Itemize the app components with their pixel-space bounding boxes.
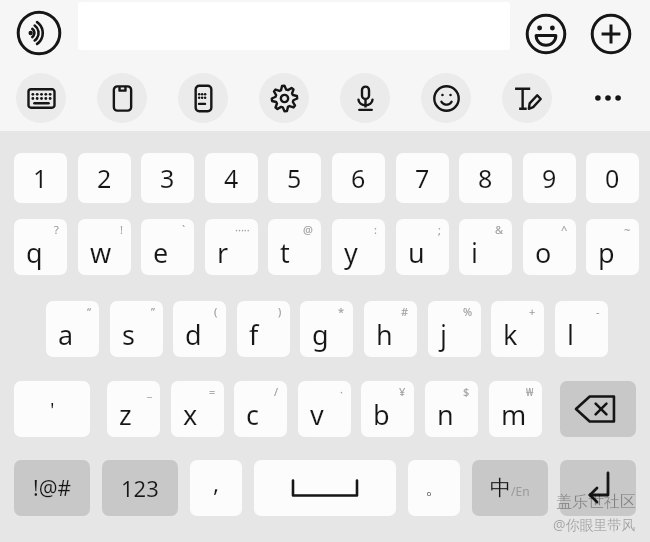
button[interactable]: Text editing (502, 73, 552, 123)
staticText: t (280, 234, 290, 271)
staticText: 5 (287, 161, 302, 195)
staticText: + (529, 304, 536, 319)
button[interactable]: 。 (408, 460, 460, 516)
staticText: 盖乐世社区 (556, 492, 636, 512)
staticText: = (209, 384, 216, 399)
staticText: # (401, 304, 409, 319)
staticText: @你眼里带风 (553, 515, 636, 534)
button[interactable]: ) (237, 301, 290, 357)
button[interactable]: 1 (14, 153, 67, 203)
button[interactable]: Clipboard (97, 73, 147, 123)
staticText: 4 (224, 161, 239, 195)
staticText: 0 (605, 161, 620, 195)
button[interactable]: ! (78, 219, 131, 275)
staticText: ~ (624, 222, 631, 237)
staticText: ' (50, 396, 55, 423)
button[interactable]: 4 (205, 153, 258, 203)
staticText: ! (120, 222, 123, 237)
button[interactable]: 6 (332, 153, 385, 203)
button[interactable]: * (300, 301, 353, 357)
staticText: 9 (542, 161, 557, 195)
button[interactable]: / (234, 381, 287, 437)
button[interactable]: ` (141, 219, 194, 275)
button[interactable]: ₩ (489, 381, 542, 437)
button[interactable]: ~ (586, 219, 639, 275)
button[interactable]: ¥ (361, 381, 414, 437)
staticText: ( (214, 304, 218, 319)
button[interactable]: ····· (205, 219, 258, 275)
staticText: x (183, 396, 198, 433)
staticText: m (501, 396, 527, 433)
button[interactable]: Enter (560, 460, 636, 516)
button[interactable]: Settings (259, 73, 309, 123)
button[interactable]: - (555, 301, 608, 357)
button[interactable]: 8 (459, 153, 512, 203)
button[interactable]: 9 (523, 153, 576, 203)
staticText: w (90, 234, 112, 271)
button[interactable]: : (332, 219, 385, 275)
button[interactable]: · (298, 381, 351, 437)
button[interactable]: ^ (523, 219, 576, 275)
button[interactable]: + (491, 301, 544, 357)
staticText: 7 (415, 161, 430, 195)
button[interactable]: !@# (14, 460, 90, 516)
button[interactable]: More options (583, 73, 633, 123)
staticText: ····· (235, 222, 250, 237)
staticText: @ (303, 222, 313, 237)
button[interactable]: 5 (268, 153, 321, 203)
button[interactable]: Handwriting (178, 73, 228, 123)
button[interactable]: Keyboard layout (16, 73, 66, 123)
button[interactable]: 2 (78, 153, 131, 203)
staticText: ` (182, 222, 186, 237)
staticText: o (535, 234, 552, 271)
staticText: , (213, 467, 220, 498)
button[interactable]: “ (46, 301, 99, 357)
button[interactable]: % (428, 301, 481, 357)
button[interactable]: Add (585, 8, 637, 60)
staticText: · (340, 384, 343, 399)
button[interactable]: Space (254, 460, 396, 516)
staticText: v (310, 396, 324, 433)
staticText: c (246, 396, 259, 433)
button[interactable]: ' (14, 381, 90, 437)
button[interactable]: , (190, 460, 242, 516)
staticText: f (249, 316, 259, 353)
staticText: : (374, 222, 377, 237)
staticText: a (58, 316, 74, 353)
staticText: i (471, 234, 478, 271)
staticText: ; (438, 222, 441, 237)
button[interactable]: = (171, 381, 224, 437)
staticText: & (495, 222, 504, 237)
staticText: ¥ (399, 384, 406, 399)
staticText: !@# (33, 474, 72, 503)
button[interactable]: Voice input (14, 8, 64, 58)
staticText: ) (278, 304, 282, 319)
staticText: ” (151, 304, 155, 319)
button[interactable]: ; (396, 219, 449, 275)
button[interactable]: 中 (472, 460, 548, 516)
staticText: 6 (351, 161, 366, 195)
button[interactable]: ( (173, 301, 226, 357)
button[interactable]: _ (107, 381, 160, 437)
button[interactable]: # (364, 301, 417, 357)
button[interactable]: Emoji (520, 8, 572, 60)
staticText: ? (54, 222, 59, 237)
button[interactable]: ” (110, 301, 163, 357)
button[interactable]: Backspace (560, 381, 636, 437)
staticText: / (274, 384, 279, 399)
button[interactable]: 7 (396, 153, 449, 203)
staticText: z (119, 396, 132, 433)
button[interactable]: 0 (586, 153, 639, 203)
button[interactable]: 3 (141, 153, 194, 203)
button[interactable]: Stickers (421, 73, 471, 123)
button[interactable]: & (459, 219, 512, 275)
button[interactable]: $ (425, 381, 478, 437)
staticText: “ (87, 304, 91, 319)
staticText: q (26, 234, 43, 271)
button[interactable]: ? (14, 219, 67, 275)
button[interactable]: 123 (102, 460, 178, 516)
button[interactable]: Voice input (340, 73, 390, 123)
button[interactable]: @ (268, 219, 321, 275)
staticText: 3 (160, 161, 175, 195)
